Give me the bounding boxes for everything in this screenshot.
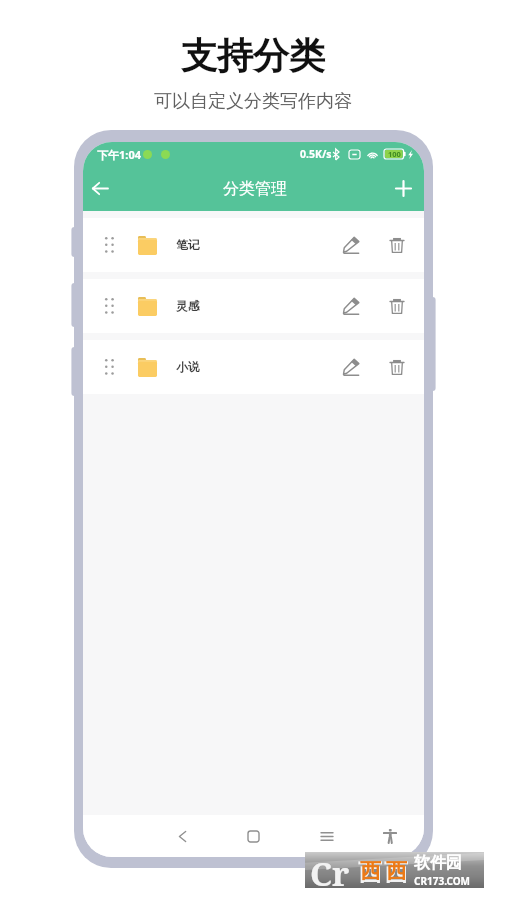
staticText: 西 bbox=[386, 858, 407, 883]
staticText: CR173.COM bbox=[414, 874, 471, 888]
staticText: 支持分类 bbox=[181, 33, 325, 78]
button[interactable]: Edit bbox=[331, 225, 371, 265]
button[interactable]: Back bbox=[164, 818, 200, 854]
button[interactable]: Home bbox=[235, 818, 271, 854]
staticText: 西 bbox=[358, 858, 382, 883]
button[interactable]: Edit bbox=[331, 347, 371, 387]
staticText: 小说 bbox=[176, 360, 200, 375]
staticText: 西 bbox=[360, 858, 381, 883]
button[interactable]: Delete bbox=[377, 225, 417, 265]
button[interactable]: Delete bbox=[377, 286, 417, 326]
button[interactable]: Add category bbox=[383, 166, 424, 211]
button[interactable]: 笔记 bbox=[83, 218, 424, 272]
button[interactable]: 小说 bbox=[83, 340, 424, 394]
button[interactable]: 灵感 bbox=[83, 279, 424, 333]
button[interactable]: Recent apps bbox=[309, 818, 345, 854]
staticText: Cr bbox=[310, 851, 350, 887]
staticText: 笔记 bbox=[176, 238, 200, 253]
button[interactable]: Delete bbox=[377, 347, 417, 387]
staticText: 下午1:04 bbox=[97, 147, 141, 162]
button[interactable]: Back bbox=[83, 166, 116, 211]
staticText: 0.5K/s bbox=[300, 147, 332, 161]
staticText: 可以自定义分类写作内容 bbox=[154, 90, 352, 113]
staticText: 分类管理 bbox=[223, 179, 287, 199]
staticText: 软件园 bbox=[414, 853, 462, 873]
staticText: 西 bbox=[384, 858, 408, 883]
staticText: 100 bbox=[388, 149, 401, 159]
staticText: 灵感 bbox=[176, 299, 200, 314]
button[interactable]: Edit bbox=[331, 286, 371, 326]
button[interactable]: Accessibility bbox=[372, 818, 408, 854]
